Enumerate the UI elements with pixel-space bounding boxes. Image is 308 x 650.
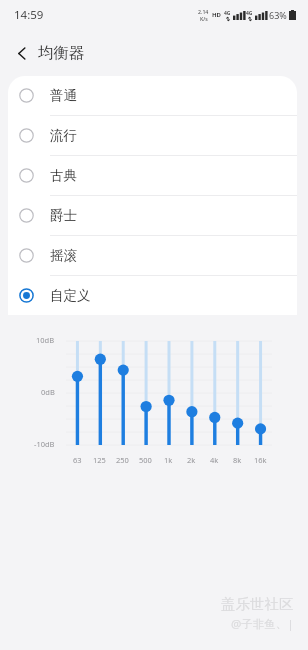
button[interactable]: 摇滚 — [8, 236, 297, 276]
staticText: -10dB — [34, 439, 55, 449]
staticText: 63% — [269, 9, 287, 21]
staticText: 4G — [246, 10, 253, 17]
staticText: 10dB — [36, 335, 55, 345]
staticText: 250 — [116, 455, 129, 465]
staticText: 古典 — [50, 167, 77, 184]
button[interactable]: 普通 — [8, 76, 297, 116]
staticText: 0dB — [41, 387, 55, 397]
staticText: 普通 — [50, 87, 77, 104]
staticText: 63 — [73, 455, 82, 465]
staticText: 摇滚 — [50, 247, 77, 264]
button[interactable]: 自定义 — [8, 276, 297, 315]
staticText: 4k — [210, 455, 219, 465]
staticText: 125 — [93, 455, 106, 465]
staticText: 2k — [187, 455, 196, 465]
staticText: 8k — [233, 455, 242, 465]
staticText: 盖乐世社区 — [221, 595, 294, 613]
staticText: @子非鱼、| — [231, 616, 294, 632]
staticText: 500 — [139, 455, 152, 465]
staticText: 流行 — [50, 127, 77, 144]
staticText: 均衡器 — [38, 43, 85, 63]
staticText: 4G — [224, 10, 231, 17]
staticText: 爵士 — [50, 207, 77, 224]
staticText: 自定义 — [50, 287, 91, 304]
staticText: 14:59 — [14, 7, 44, 23]
staticText: 1k — [164, 455, 173, 465]
staticText: K/s — [200, 15, 208, 22]
button[interactable]: Back — [5, 36, 39, 70]
staticText: 16k — [254, 455, 267, 465]
staticText: 2.14 — [198, 8, 209, 15]
button[interactable]: 古典 — [8, 156, 297, 196]
button[interactable]: 流行 — [8, 116, 297, 156]
staticText: HD — [212, 11, 221, 19]
button[interactable]: 爵士 — [8, 196, 297, 236]
